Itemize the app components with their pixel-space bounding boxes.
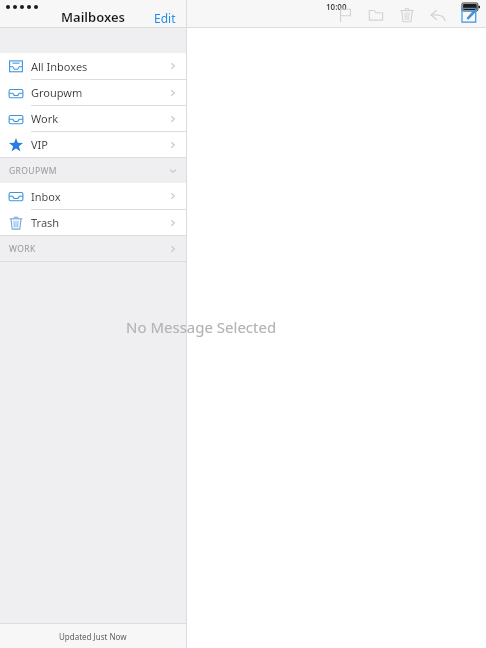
staticText: Inbox — [31, 189, 61, 204]
staticText: Groupwm — [31, 85, 83, 100]
staticText: Edit — [154, 10, 176, 24]
button[interactable]: Inbox — [0, 183, 186, 209]
button[interactable]: Reply — [427, 4, 449, 26]
button[interactable]: Edit — [144, 7, 186, 27]
button[interactable]: Move to folder — [365, 4, 387, 26]
staticText: GROUPWM — [9, 165, 57, 177]
button[interactable]: Flag — [334, 4, 356, 26]
staticText: WORK — [9, 243, 36, 255]
staticText: Trash — [31, 215, 60, 230]
button[interactable]: VIP — [0, 132, 186, 157]
staticText: 10:00 — [326, 1, 347, 12]
button[interactable]: GROUPWM — [0, 158, 186, 183]
staticText: Work — [31, 111, 59, 126]
staticText: VIP — [31, 137, 48, 152]
button[interactable]: Trash — [0, 210, 186, 235]
staticText: Updated Just Now — [59, 631, 127, 642]
staticText: Mailboxes — [61, 8, 125, 26]
button[interactable]: Work — [0, 106, 186, 131]
button[interactable]: Groupwm — [0, 80, 186, 105]
button[interactable]: Delete — [396, 4, 418, 26]
staticText: All Inboxes — [31, 59, 88, 74]
button[interactable]: WORK — [0, 236, 186, 261]
button[interactable]: All Inboxes — [0, 53, 186, 79]
staticText: No Message Selected — [126, 317, 386, 337]
button[interactable]: Compose — [458, 4, 480, 26]
